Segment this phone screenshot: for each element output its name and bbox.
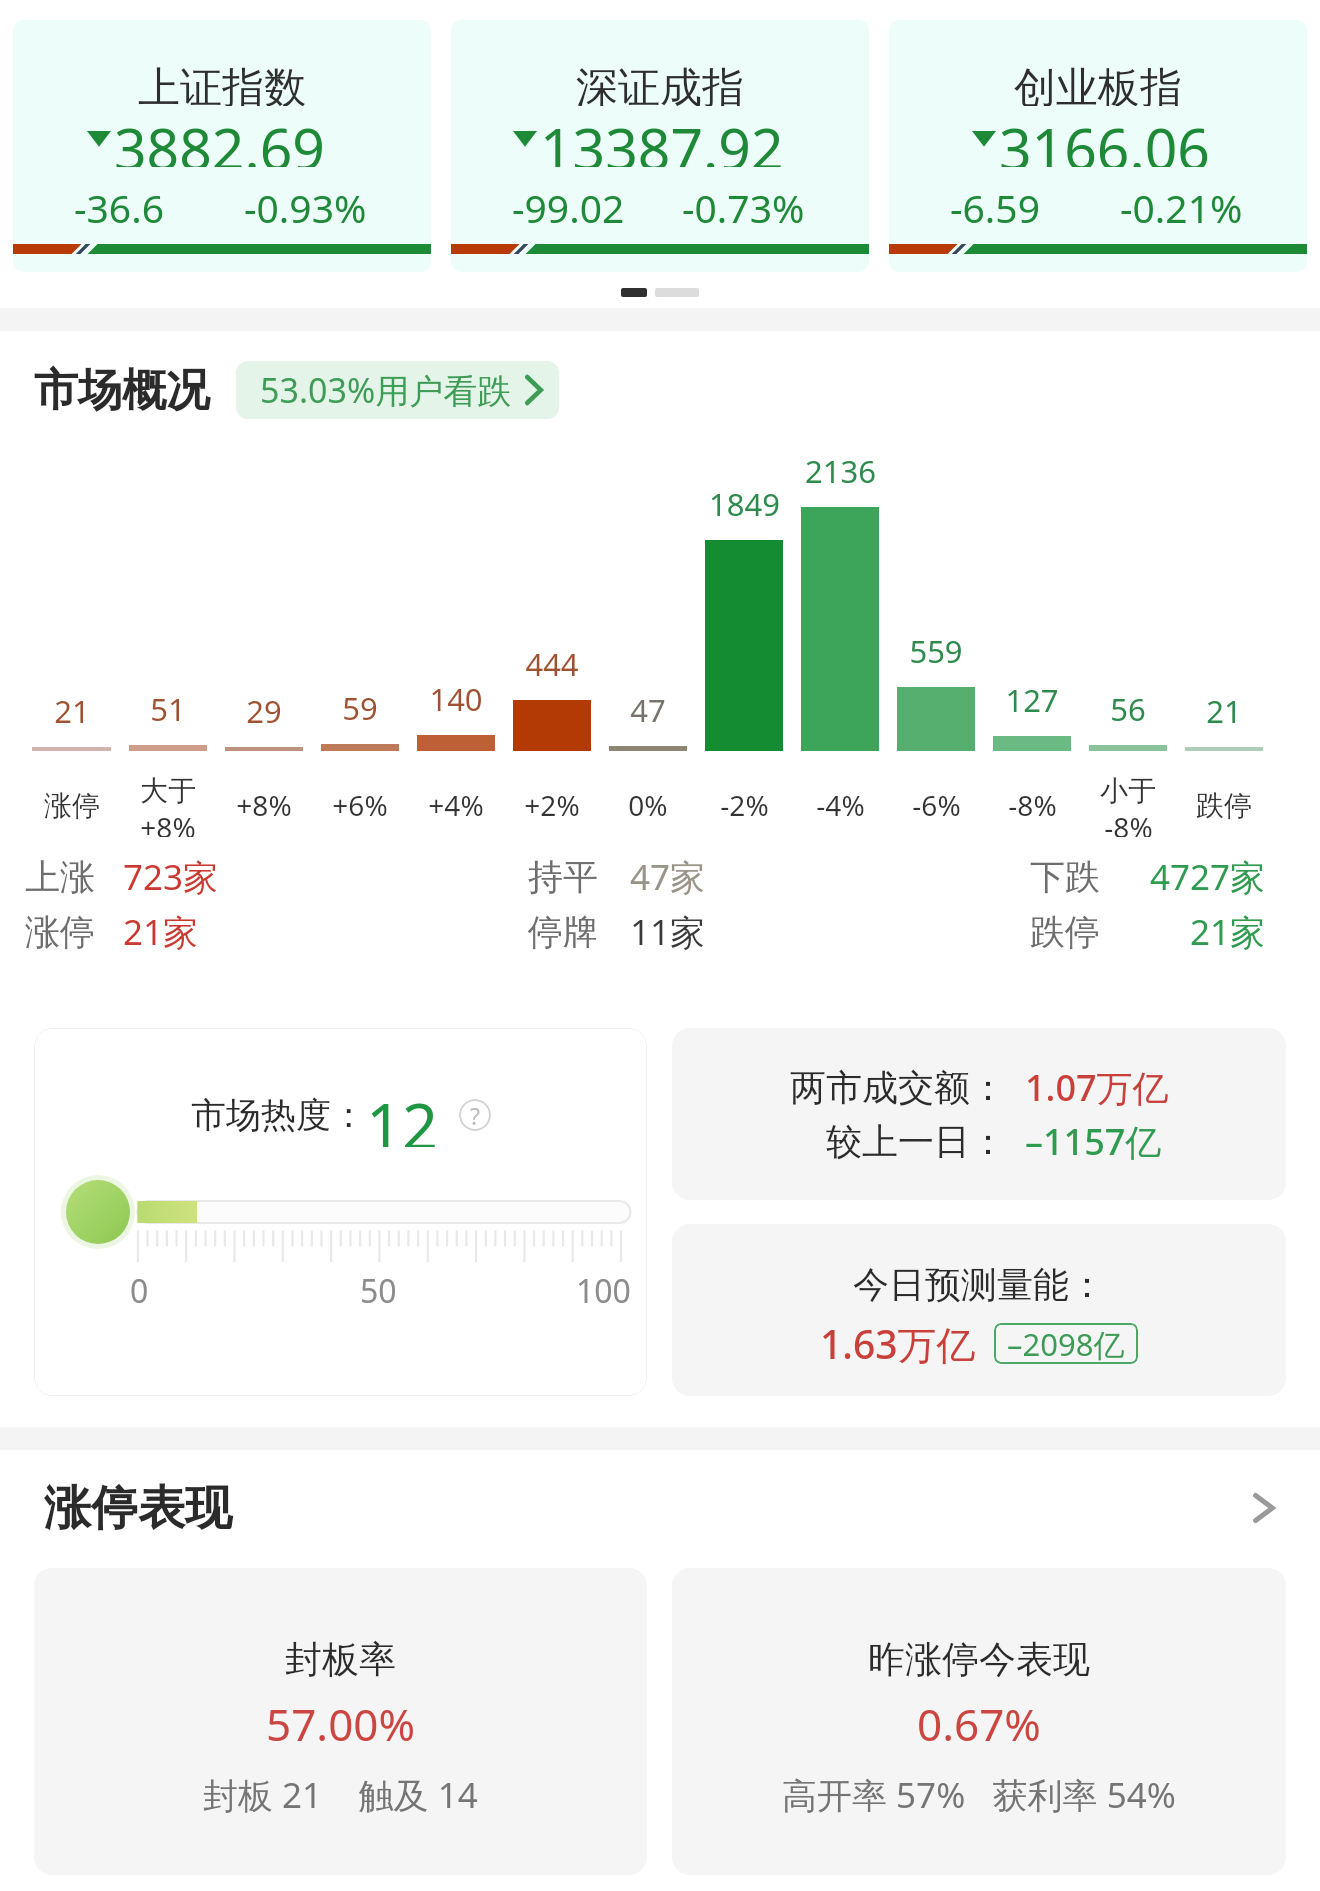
staticText: 上证指数 bbox=[138, 62, 306, 106]
staticText: -8% bbox=[1104, 808, 1153, 837]
staticText: -0.73% bbox=[682, 181, 805, 234]
staticText: 12 bbox=[366, 1083, 439, 1147]
staticText: 11家 bbox=[630, 908, 706, 956]
staticText: 51 bbox=[150, 688, 186, 730]
staticText: 涨停 bbox=[44, 788, 100, 823]
staticText: 47 bbox=[630, 689, 666, 731]
staticText: 深证成指 bbox=[576, 62, 744, 106]
staticText: 持平 bbox=[528, 855, 598, 899]
button[interactable]: 上证指数 bbox=[13, 20, 431, 272]
staticText: 0.67% bbox=[917, 1694, 1041, 1754]
staticText: 57.00% bbox=[266, 1694, 416, 1754]
staticText: 上涨 bbox=[25, 855, 95, 899]
staticText: 559 bbox=[909, 630, 963, 672]
staticText: 较上一日： bbox=[826, 1119, 1006, 1164]
staticText: 跌停 bbox=[1196, 788, 1252, 823]
staticText: –2098亿 bbox=[1007, 1323, 1125, 1364]
button[interactable]: 今日预测量能： bbox=[672, 1224, 1286, 1396]
staticText: 21 bbox=[1206, 690, 1242, 732]
staticText: 1.63万亿 bbox=[820, 1317, 976, 1370]
staticText: 涨停 bbox=[25, 910, 95, 954]
staticText: 140 bbox=[429, 678, 483, 720]
staticText: 723家 bbox=[123, 853, 219, 901]
staticText: 4727家 bbox=[1150, 853, 1266, 901]
staticText: 0% bbox=[628, 786, 668, 824]
staticText: 高开率 57% 获利率 54% bbox=[782, 1771, 1176, 1819]
staticText: 2136 bbox=[805, 450, 876, 492]
staticText: +2% bbox=[524, 786, 580, 824]
button[interactable]: 涨停表现 bbox=[0, 1470, 1320, 1546]
button[interactable]: 市场热度： bbox=[34, 1028, 647, 1396]
button[interactable]: 昨涨停今表现 bbox=[672, 1568, 1286, 1875]
staticText: -36.6 bbox=[74, 181, 164, 234]
staticText: 封板率 bbox=[285, 1636, 396, 1683]
staticText: 100 bbox=[576, 1269, 631, 1313]
staticText: 小于 bbox=[1100, 773, 1156, 808]
staticText: 市场热度： bbox=[191, 1093, 366, 1137]
staticText: 13387.92 bbox=[540, 109, 784, 167]
staticText: -99.02 bbox=[512, 181, 625, 234]
staticText: -2% bbox=[720, 786, 769, 824]
staticText: ? bbox=[470, 1100, 480, 1131]
staticText: -6.59 bbox=[950, 181, 1040, 234]
other: 说明 bbox=[459, 1099, 491, 1131]
staticText: 21 bbox=[54, 690, 90, 732]
staticText: 涨停表现 bbox=[44, 1479, 232, 1538]
button[interactable]: 两市成交额： bbox=[672, 1028, 1286, 1200]
staticText: +4% bbox=[428, 786, 484, 824]
staticText: 21家 bbox=[1190, 908, 1266, 956]
staticText: 127 bbox=[1005, 679, 1059, 721]
staticText: -4% bbox=[816, 786, 865, 824]
staticText: 昨涨停今表现 bbox=[868, 1636, 1090, 1683]
staticText: -8% bbox=[1008, 786, 1057, 824]
staticText: 市场概况 bbox=[34, 363, 210, 418]
staticText: +6% bbox=[332, 786, 388, 824]
staticText: 47家 bbox=[630, 853, 706, 901]
staticText: 53.03%用户看跌 bbox=[260, 367, 512, 413]
staticText: 1.07万亿 bbox=[1025, 1063, 1169, 1112]
staticText: -6% bbox=[912, 786, 961, 824]
staticText: 两市成交额： bbox=[790, 1065, 1006, 1110]
staticText: 创业板指 bbox=[1014, 62, 1182, 106]
staticText: 大于 bbox=[140, 773, 196, 808]
staticText: 今日预测量能： bbox=[853, 1262, 1105, 1307]
staticText: 444 bbox=[525, 643, 579, 685]
staticText: 跌停 bbox=[1030, 910, 1100, 954]
staticText: -0.21% bbox=[1120, 181, 1243, 234]
staticText: 下跌 bbox=[1030, 855, 1100, 899]
staticText: 0 bbox=[130, 1269, 149, 1313]
button[interactable]: 创业板指 bbox=[889, 20, 1307, 272]
staticText: +8% bbox=[236, 786, 292, 824]
staticText: 56 bbox=[1110, 688, 1146, 730]
staticText: 3166.06 bbox=[999, 109, 1210, 167]
button[interactable]: 深证成指 bbox=[451, 20, 869, 272]
staticText: -0.93% bbox=[244, 181, 367, 234]
staticText: 封板 21 触及 14 bbox=[203, 1771, 478, 1819]
staticText: 59 bbox=[342, 687, 378, 729]
staticText: +8% bbox=[140, 808, 196, 837]
staticText: 停牌 bbox=[528, 910, 598, 954]
button[interactable]: 53.03%用户看跌 bbox=[236, 361, 559, 419]
staticText: 3882.69 bbox=[114, 109, 325, 167]
staticText: 50 bbox=[360, 1269, 397, 1313]
staticText: 1849 bbox=[709, 483, 780, 525]
staticText: 21家 bbox=[123, 908, 199, 956]
staticText: –1157亿 bbox=[1025, 1117, 1162, 1166]
button[interactable]: 封板率 bbox=[34, 1568, 647, 1875]
staticText: 29 bbox=[246, 690, 282, 732]
